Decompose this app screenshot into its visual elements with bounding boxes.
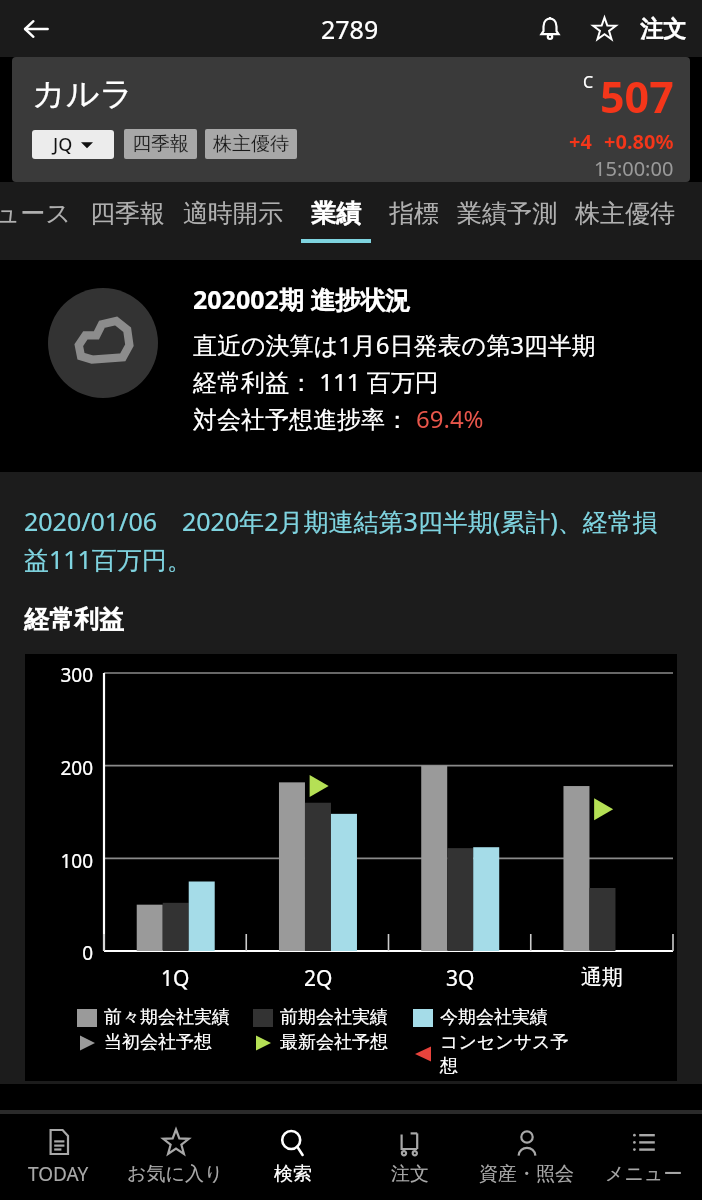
button[interactable]: お気に入り [117, 1114, 234, 1200]
button[interactable]: Favorite [578, 3, 630, 55]
staticText: 指標 [389, 198, 439, 229]
staticText: 1Q [161, 964, 190, 993]
button[interactable]: Back [8, 1, 64, 57]
staticText: JQ [53, 132, 73, 157]
button[interactable]: 2020/01/06 2020年2月期連結第3四半期(累計)、経常損益111百万… [24, 504, 680, 576]
staticText: 注文 [640, 15, 686, 44]
staticText: 最新会社予想 [280, 1031, 388, 1054]
staticText: +4 [569, 128, 592, 155]
staticText: お気に入り [127, 1162, 224, 1186]
staticText: 資産・照会 [479, 1162, 574, 1186]
staticText: 業績 [311, 198, 361, 229]
staticText: メニュー [605, 1162, 683, 1186]
button[interactable]: JQ [32, 130, 114, 159]
button[interactable]: Alerts [522, 1, 578, 57]
button[interactable]: 株主優待 [575, 182, 675, 260]
staticText: カルラ [32, 73, 134, 115]
staticText: 今期会社実績 [440, 1006, 548, 1029]
staticText: 前期会社実績 [280, 1006, 388, 1029]
staticText: 直近の決算は1月6日発表の第3四半期 [193, 328, 596, 361]
staticText: コンセンサス予想 [440, 1031, 573, 1077]
staticText: 株主優待 [575, 198, 675, 229]
staticText: ュース [0, 198, 72, 229]
button[interactable]: 業績 [301, 182, 371, 260]
staticText: 対会社予想進捗率： [193, 402, 416, 435]
button[interactable]: TODAY [0, 1114, 117, 1200]
staticText: 経常利益 [24, 604, 124, 635]
staticText: 業績予測 [457, 198, 557, 229]
staticText: 適時開示 [183, 198, 283, 229]
staticText: 300 [25, 662, 93, 688]
staticText: 検索 [274, 1162, 312, 1186]
staticText: 注文 [391, 1162, 429, 1186]
button[interactable]: 202002期 進捗状況 [0, 260, 702, 472]
staticText: 100 [25, 848, 93, 874]
button[interactable]: 株主優待 [213, 132, 289, 156]
staticText: 507 [600, 67, 674, 126]
staticText: 3Q [446, 964, 475, 993]
staticText: 202002期 進捗状況 [193, 282, 411, 316]
staticText: 2789 [321, 12, 379, 46]
staticText: 四季報 [90, 198, 165, 229]
button[interactable]: ュース [0, 182, 72, 260]
button[interactable]: 指標 [389, 182, 439, 260]
staticText: 15:00:00 [594, 155, 674, 182]
staticText: 通期 [581, 964, 623, 990]
staticText: 四季報 [132, 132, 189, 156]
staticText: 2020/01/06 2020年2月期連結第3四半期(累計)、経常損益111百万… [24, 504, 680, 576]
staticText: 200 [25, 755, 93, 781]
button[interactable]: 注文 [351, 1114, 468, 1200]
staticText: 株主優待 [213, 132, 289, 156]
staticText: 69.4% [416, 402, 484, 435]
staticText: 0 [25, 940, 93, 966]
button[interactable]: 四季報 [90, 182, 165, 260]
staticText: 経常利益： 111 百万円 [193, 365, 439, 398]
button[interactable]: 適時開示 [183, 182, 283, 260]
button[interactable]: メニュー [585, 1114, 702, 1200]
staticText: 当初会社予想 [104, 1031, 212, 1054]
button[interactable]: 四季報 [132, 132, 189, 156]
staticText: C [583, 71, 594, 93]
button[interactable]: 検索 [234, 1114, 351, 1200]
button[interactable]: 注文 [640, 1, 686, 57]
button[interactable]: 資産・照会 [468, 1114, 585, 1200]
staticText: 2Q [304, 964, 333, 993]
staticText: 前々期会社実績 [104, 1006, 230, 1029]
staticText: TODAY [28, 1161, 89, 1187]
button[interactable]: 業績予測 [457, 182, 557, 260]
staticText: +0.80% [604, 128, 674, 155]
button[interactable]: カルラ [12, 57, 690, 182]
